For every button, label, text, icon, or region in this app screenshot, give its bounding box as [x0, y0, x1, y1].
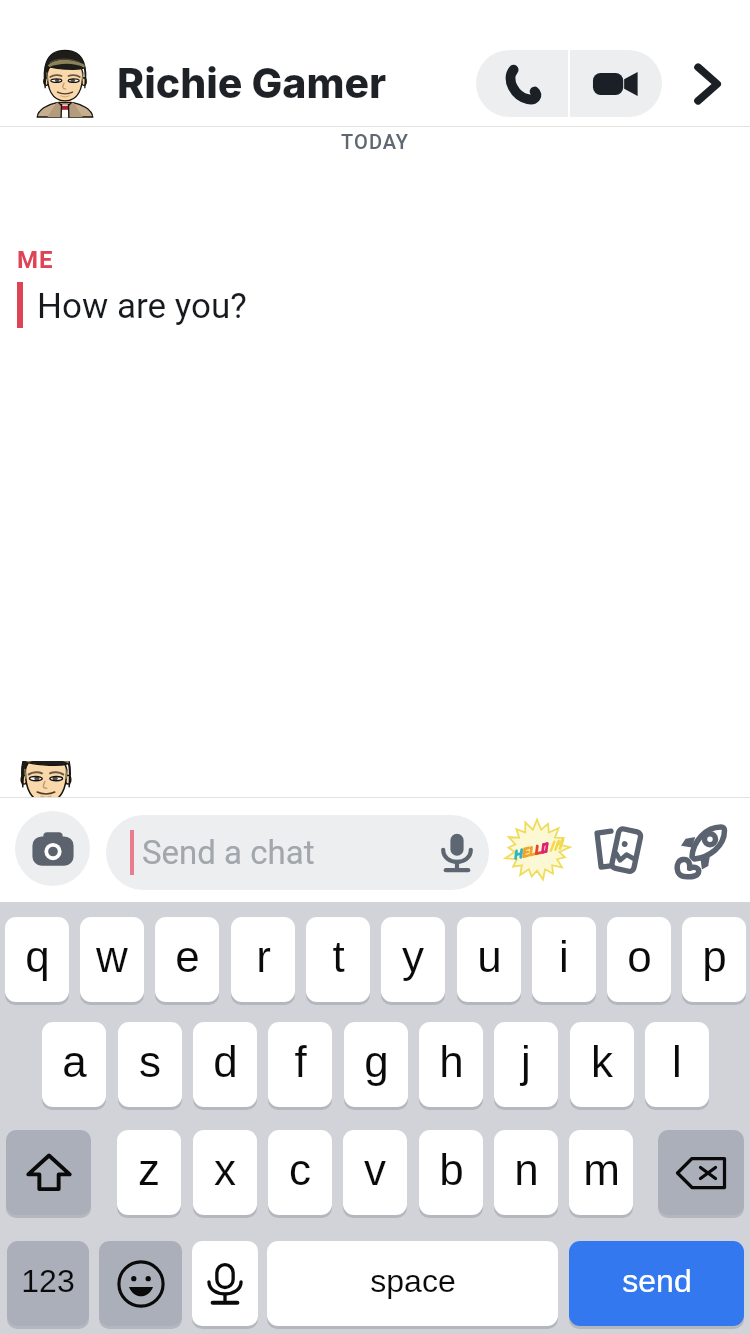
staticText: f	[294, 1037, 307, 1086]
button[interactable]: 123	[7, 1241, 89, 1326]
staticText: i	[559, 932, 569, 981]
staticText: g	[364, 1037, 389, 1086]
staticText: 123	[21, 1263, 75, 1299]
button[interactable]: Video call	[570, 50, 662, 117]
button[interactable]: c	[268, 1130, 332, 1215]
button[interactable]: Memories	[589, 820, 649, 880]
staticText: v	[364, 1145, 386, 1194]
staticText: TODAY	[341, 130, 410, 153]
button[interactable]: q	[5, 917, 69, 1002]
staticText: t	[332, 932, 345, 981]
staticText: r	[256, 932, 271, 981]
button[interactable]: e	[155, 917, 219, 1002]
button[interactable]: Backspace	[658, 1130, 744, 1215]
button[interactable]: j	[494, 1022, 558, 1107]
staticText: space	[370, 1263, 456, 1299]
staticText: l	[672, 1037, 682, 1086]
button[interactable]: a	[42, 1022, 106, 1107]
button[interactable]: h	[419, 1022, 483, 1107]
button[interactable]: Send a chat	[106, 815, 489, 890]
staticText: q	[25, 932, 50, 981]
button[interactable]: k	[570, 1022, 634, 1107]
button[interactable]: Games	[671, 820, 731, 880]
staticText: h	[439, 1037, 464, 1086]
button[interactable]: x	[193, 1130, 257, 1215]
button[interactable]: l	[645, 1022, 709, 1107]
button[interactable]: Dictation	[192, 1241, 258, 1326]
button[interactable]: Open profile	[678, 56, 734, 112]
staticText: j	[521, 1037, 531, 1086]
staticText: u	[477, 932, 502, 981]
staticText: n	[514, 1145, 539, 1194]
staticText: b	[439, 1145, 464, 1194]
staticText: y	[402, 932, 424, 981]
button[interactable]: w	[80, 917, 144, 1002]
staticText: p	[702, 932, 727, 981]
button[interactable]: u	[457, 917, 521, 1002]
staticText: send	[622, 1263, 692, 1299]
button[interactable]: space	[267, 1241, 558, 1326]
staticText: Send a chat	[142, 833, 315, 872]
staticText: Richie Gamer	[117, 58, 387, 108]
staticText: c	[289, 1145, 311, 1194]
button[interactable]: z	[117, 1130, 181, 1215]
staticText: d	[213, 1037, 238, 1086]
button[interactable]: Shift	[6, 1130, 91, 1215]
button[interactable]: y	[381, 917, 445, 1002]
button[interactable]: r	[231, 917, 295, 1002]
staticText: How are you?	[37, 286, 247, 327]
button[interactable]: send	[569, 1241, 744, 1326]
button[interactable]: p	[682, 917, 746, 1002]
button[interactable]: d	[193, 1022, 257, 1107]
button[interactable]: o	[607, 917, 671, 1002]
button[interactable]: s	[118, 1022, 182, 1107]
button[interactable]: g	[344, 1022, 408, 1107]
button[interactable]: Call	[476, 50, 568, 117]
button[interactable]: f	[268, 1022, 332, 1107]
button[interactable]: Voice note	[432, 828, 482, 878]
button[interactable]: n	[494, 1130, 558, 1215]
button[interactable]: Stickers	[503, 816, 571, 884]
staticText: x	[214, 1145, 236, 1194]
staticText: m	[583, 1145, 620, 1194]
staticText: a	[62, 1037, 87, 1086]
staticText: k	[591, 1037, 613, 1086]
button[interactable]: Camera	[15, 811, 90, 886]
staticText: ME	[17, 246, 54, 274]
staticText: o	[627, 932, 652, 981]
button[interactable]: t	[306, 917, 370, 1002]
staticText: w	[96, 932, 128, 981]
staticText: z	[138, 1145, 160, 1194]
button[interactable]: i	[532, 917, 596, 1002]
button[interactable]: b	[419, 1130, 483, 1215]
button[interactable]: m	[569, 1130, 633, 1215]
staticText: s	[139, 1037, 161, 1086]
staticText: e	[175, 932, 200, 981]
button[interactable]: v	[343, 1130, 407, 1215]
button[interactable]: Emoji keyboard	[99, 1241, 182, 1326]
